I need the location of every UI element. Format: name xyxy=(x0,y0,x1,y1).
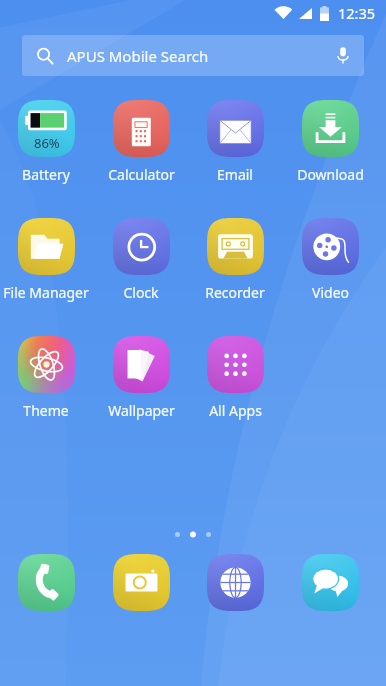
staticText: Clock xyxy=(123,283,159,302)
button[interactable]: Recorder xyxy=(188,218,282,302)
button[interactable]: Email xyxy=(188,100,282,184)
button[interactable]: Download xyxy=(283,100,377,184)
button[interactable]: Clock xyxy=(94,218,188,302)
button[interactable]: APUS Mobile Search xyxy=(22,35,364,76)
button[interactable]: Wallpaper xyxy=(94,336,188,420)
staticText: 86% xyxy=(34,134,60,152)
button[interactable]: Phone xyxy=(0,554,93,611)
staticText: File Manager xyxy=(3,283,89,302)
staticText: APUS Mobile Search xyxy=(67,46,209,66)
button[interactable]: Camera xyxy=(94,554,188,611)
button[interactable]: Browser xyxy=(188,554,282,611)
staticText: All Apps xyxy=(209,401,262,420)
staticText: Calculator xyxy=(108,165,175,184)
staticText: Theme xyxy=(23,401,69,420)
staticText: Download xyxy=(297,165,364,184)
staticText: 12:35 xyxy=(338,3,376,23)
button[interactable]: File Manager xyxy=(0,218,93,302)
button[interactable]: Messages xyxy=(283,554,377,611)
staticText: Recorder xyxy=(205,283,265,302)
button[interactable]: Video xyxy=(283,218,377,302)
button[interactable]: Calculator xyxy=(94,100,188,184)
button[interactable]: 86% xyxy=(0,100,93,184)
staticText: Video xyxy=(312,283,349,302)
staticText: Wallpaper xyxy=(108,401,175,420)
button[interactable]: All Apps xyxy=(188,336,282,420)
staticText: Battery xyxy=(22,165,70,184)
button[interactable]: Theme xyxy=(0,336,93,420)
staticText: Email xyxy=(217,165,253,184)
